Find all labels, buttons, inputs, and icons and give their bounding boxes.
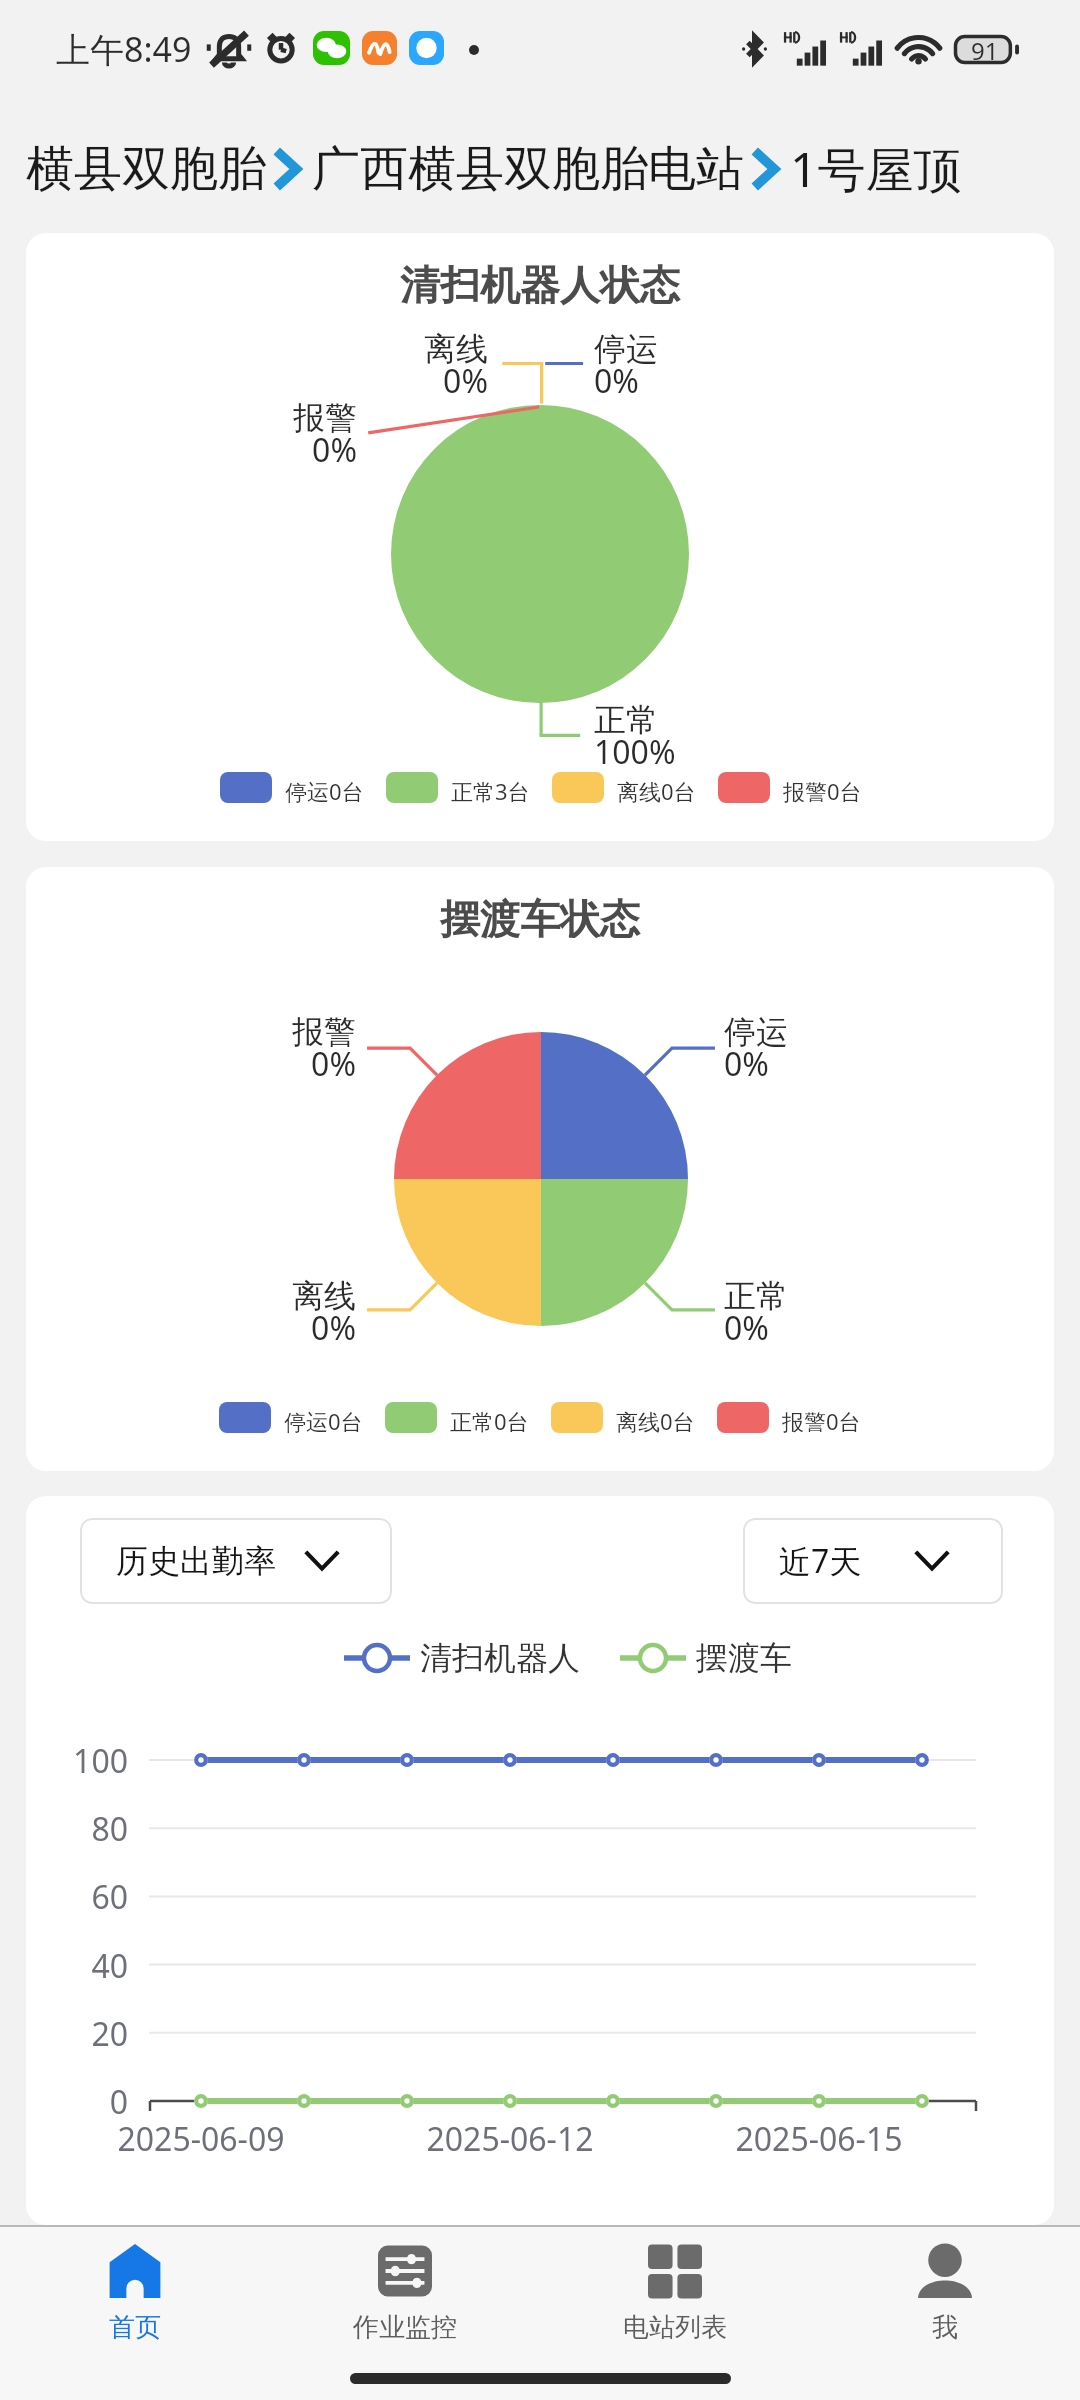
staticText: 停运0台 bbox=[284, 1406, 363, 1436]
button[interactable]: 1号屋顶 bbox=[790, 136, 962, 202]
staticText: 报警0台 bbox=[782, 1406, 861, 1436]
staticText: 作业监控 bbox=[353, 2311, 457, 2344]
button[interactable]: 报警0台 bbox=[717, 1402, 861, 1433]
button[interactable]: 历史出勤率 bbox=[80, 1518, 392, 1604]
staticText: 正常 bbox=[724, 1276, 852, 1316]
staticText: 正常3台 bbox=[451, 776, 530, 806]
staticText: 2025-06-12 bbox=[380, 2117, 640, 2161]
staticText: 0% bbox=[594, 359, 722, 403]
button[interactable]: 正常3台 bbox=[386, 772, 530, 803]
staticText: 正常 bbox=[594, 700, 764, 740]
button[interactable]: 报警0台 bbox=[718, 772, 862, 803]
staticText: 摆渡车状态 bbox=[440, 894, 640, 944]
staticText: 0% bbox=[724, 1042, 852, 1086]
button[interactable]: 近7天 bbox=[743, 1518, 1003, 1604]
staticText: 0% bbox=[228, 1306, 356, 1350]
staticText: 报警0台 bbox=[783, 776, 862, 806]
staticText: 80 bbox=[36, 1807, 128, 1851]
button[interactable]: 摆渡车 bbox=[620, 1638, 792, 1678]
button[interactable]: 离线0台 bbox=[552, 772, 696, 803]
button[interactable]: 停运0台 bbox=[220, 772, 364, 803]
staticText: 停运 bbox=[594, 329, 722, 369]
staticText: 摆渡车 bbox=[696, 1638, 792, 1678]
staticText: 60 bbox=[36, 1875, 128, 1919]
button[interactable]: 清扫机器人 bbox=[344, 1638, 580, 1678]
button[interactable]: 停运0台 bbox=[219, 1402, 363, 1433]
staticText: 近7天 bbox=[779, 1539, 862, 1583]
button[interactable]: 广西横县双胞胎电站 bbox=[312, 139, 744, 199]
staticText: 报警 bbox=[228, 1012, 356, 1052]
staticText: 100 bbox=[36, 1739, 128, 1783]
staticText: 离线0台 bbox=[616, 1406, 695, 1436]
button[interactable]: 电站列表 bbox=[540, 2227, 810, 2363]
staticText: 电站列表 bbox=[623, 2311, 727, 2344]
button[interactable]: 离线0台 bbox=[551, 1402, 695, 1433]
button[interactable]: 首页 bbox=[0, 2227, 270, 2363]
staticText: 40 bbox=[36, 1944, 128, 1988]
staticText: 91 bbox=[971, 34, 999, 63]
staticText: 100% bbox=[594, 730, 764, 774]
staticText: 2025-06-09 bbox=[71, 2117, 331, 2161]
staticText: 正常0台 bbox=[450, 1406, 529, 1436]
staticText: 历史出勤率 bbox=[116, 1541, 276, 1581]
staticText: 0% bbox=[229, 428, 357, 472]
staticText: 停运0台 bbox=[285, 776, 364, 806]
staticText: 清扫机器人状态 bbox=[400, 260, 680, 310]
staticText: 0% bbox=[724, 1306, 852, 1350]
staticText: 0% bbox=[228, 1042, 356, 1086]
staticText: 0% bbox=[360, 359, 488, 403]
staticText: 上午8:49 bbox=[56, 26, 192, 72]
button[interactable]: 横县双胞胎 bbox=[26, 139, 266, 199]
staticText: 20 bbox=[36, 2012, 128, 2056]
staticText: 首页 bbox=[109, 2311, 161, 2344]
staticText: 报警 bbox=[229, 398, 357, 438]
staticText: 离线 bbox=[228, 1276, 356, 1316]
button[interactable]: 正常0台 bbox=[385, 1402, 529, 1433]
staticText: 0 bbox=[36, 2080, 128, 2124]
staticText: 2025-06-15 bbox=[689, 2117, 949, 2161]
staticText: 停运 bbox=[724, 1012, 852, 1052]
staticText: 离线 bbox=[360, 329, 488, 369]
staticText: 离线0台 bbox=[617, 776, 696, 806]
staticText: 清扫机器人 bbox=[420, 1638, 580, 1678]
button[interactable]: 作业监控 bbox=[270, 2227, 540, 2363]
button[interactable]: 我 bbox=[810, 2227, 1080, 2363]
staticText: 我 bbox=[932, 2311, 958, 2344]
